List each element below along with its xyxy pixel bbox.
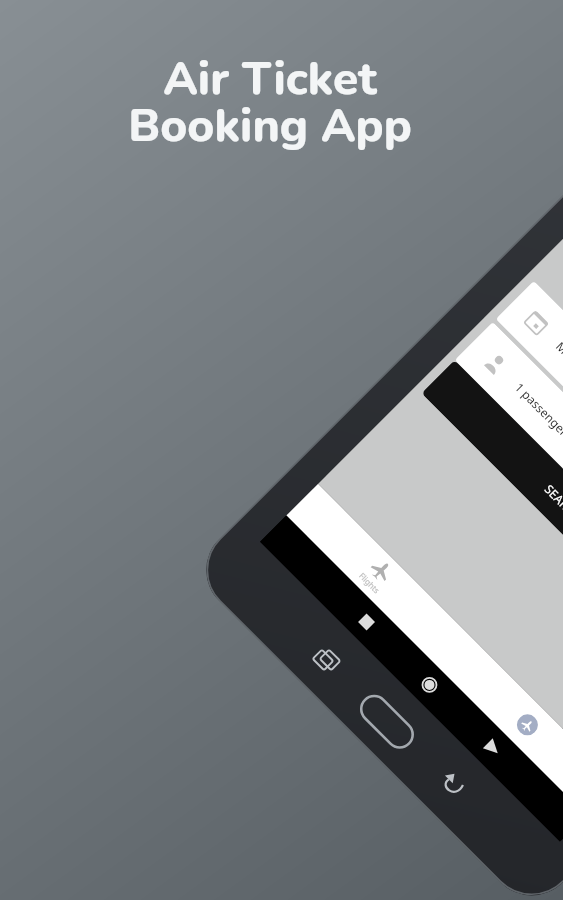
button[interactable]: Flights — [286, 484, 468, 665]
button[interactable]: Recent apps — [260, 516, 387, 642]
button[interactable]: Mon, 24 Sep — [496, 281, 563, 606]
staticText: Flights — [357, 570, 382, 595]
button[interactable]: SEARCH FLIGHTS — [421, 360, 563, 680]
button[interactable] — [436, 634, 563, 815]
button[interactable]: 1 passenger — [455, 322, 563, 647]
staticText: Air Ticket Booking App — [128, 47, 412, 157]
staticText: SEARCH FLIGHTS — [542, 481, 563, 560]
button[interactable]: Home — [360, 616, 486, 742]
button[interactable]: Back — [460, 716, 563, 842]
staticText: 1 passenger — [512, 379, 563, 439]
staticText: Mon, 24 Sep — [553, 338, 563, 399]
